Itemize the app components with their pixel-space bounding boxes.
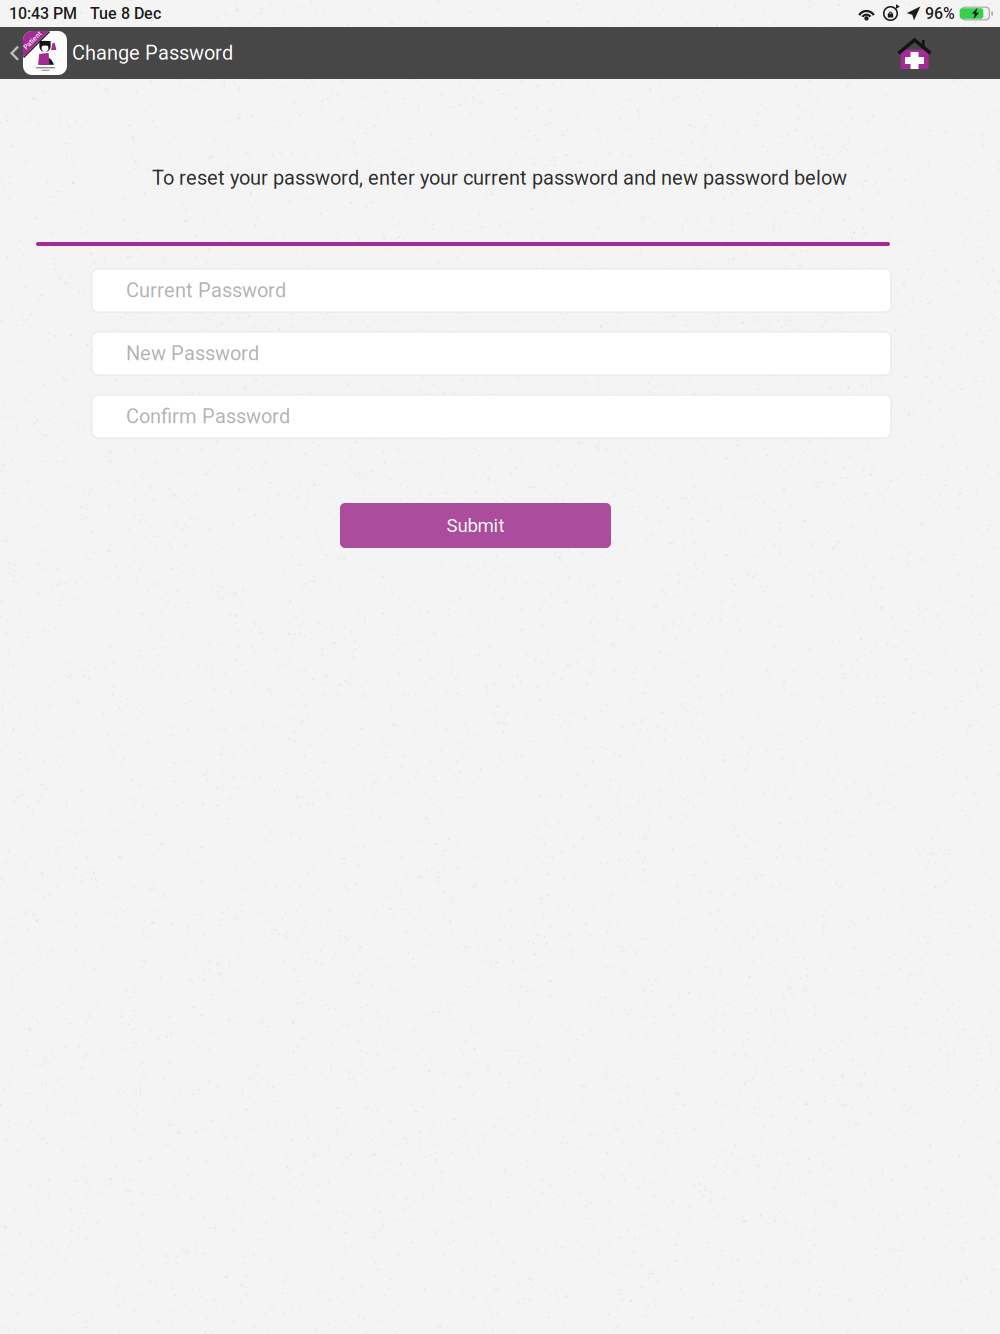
staticText: Patient <box>21 37 43 44</box>
staticText: 10:43 PM <box>9 4 77 23</box>
staticText: Current Password <box>126 279 286 302</box>
staticText: New Password <box>126 342 259 365</box>
staticText: Confirm Password <box>126 405 290 428</box>
button[interactable]: Submit <box>340 503 611 548</box>
staticText: 96% <box>925 4 955 23</box>
button[interactable]: Back <box>0 27 67 79</box>
staticText: Change Password <box>72 41 233 65</box>
staticText: Submit <box>446 515 504 536</box>
staticText: Tue 8 Dec <box>90 4 161 23</box>
button[interactable]: New Password <box>92 332 891 375</box>
staticText: To reset your password, enter your curre… <box>152 166 847 190</box>
button[interactable]: Current Password <box>92 269 891 312</box>
button[interactable]: Confirm Password <box>92 395 891 438</box>
button[interactable]: Home <box>896 27 1000 79</box>
